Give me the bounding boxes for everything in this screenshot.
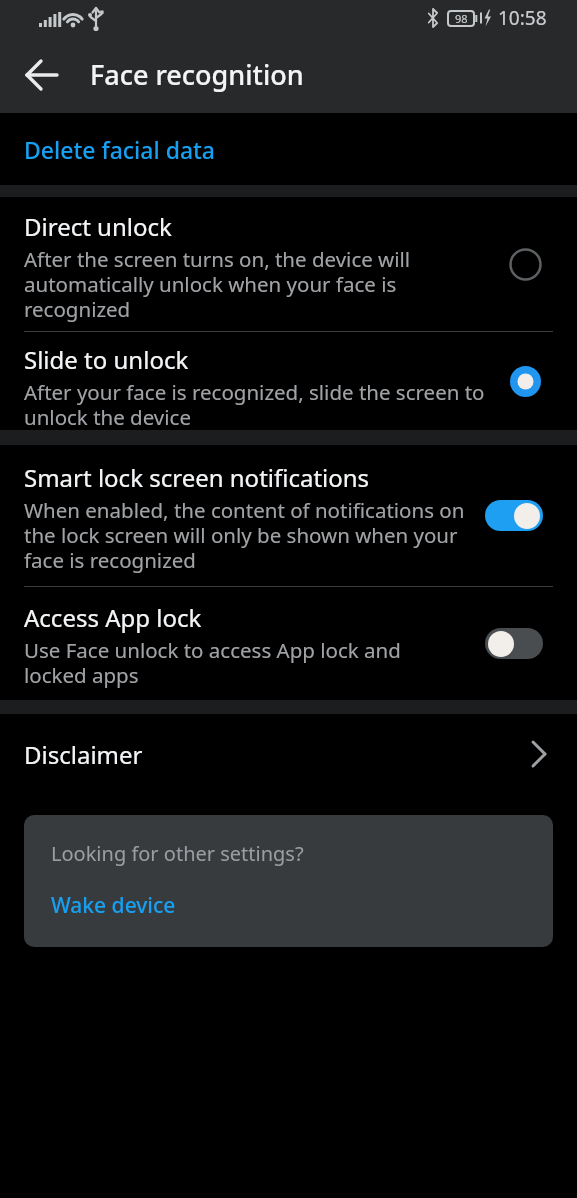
- staticText: After the screen turns on, the device wi…: [24, 245, 411, 323]
- staticText: After your face is recognized, slide the…: [24, 378, 485, 430]
- button[interactable]: [14, 47, 70, 103]
- staticText: Face recognition: [90, 56, 304, 93]
- staticText: Looking for other settings?: [51, 840, 304, 867]
- staticText: Access App lock: [24, 601, 202, 634]
- button[interactable]: Wake device: [51, 891, 176, 920]
- button[interactable]: Direct unlock: [0, 197, 577, 331]
- staticText: Delete facial data: [24, 134, 216, 165]
- button[interactable]: Disclaimer: [0, 714, 577, 794]
- button[interactable]: Access App lock: [0, 587, 577, 700]
- staticText: Slide to unlock: [24, 343, 189, 376]
- staticText: Disclaimer: [24, 738, 531, 771]
- button[interactable]: [485, 500, 543, 531]
- button[interactable]: [485, 628, 543, 659]
- staticText: 98: [455, 11, 468, 26]
- staticText: Direct unlock: [24, 210, 172, 243]
- staticText: Use Face unlock to access App lock and l…: [24, 636, 401, 689]
- staticText: Smart lock screen notifications: [24, 461, 370, 494]
- button[interactable]: Slide to unlock: [0, 332, 577, 430]
- button[interactable]: Delete facial data: [0, 113, 577, 185]
- staticText: When enabled, the content of notificatio…: [24, 496, 465, 574]
- staticText: 10:58: [498, 5, 547, 31]
- button[interactable]: Smart lock screen notifications: [0, 445, 577, 586]
